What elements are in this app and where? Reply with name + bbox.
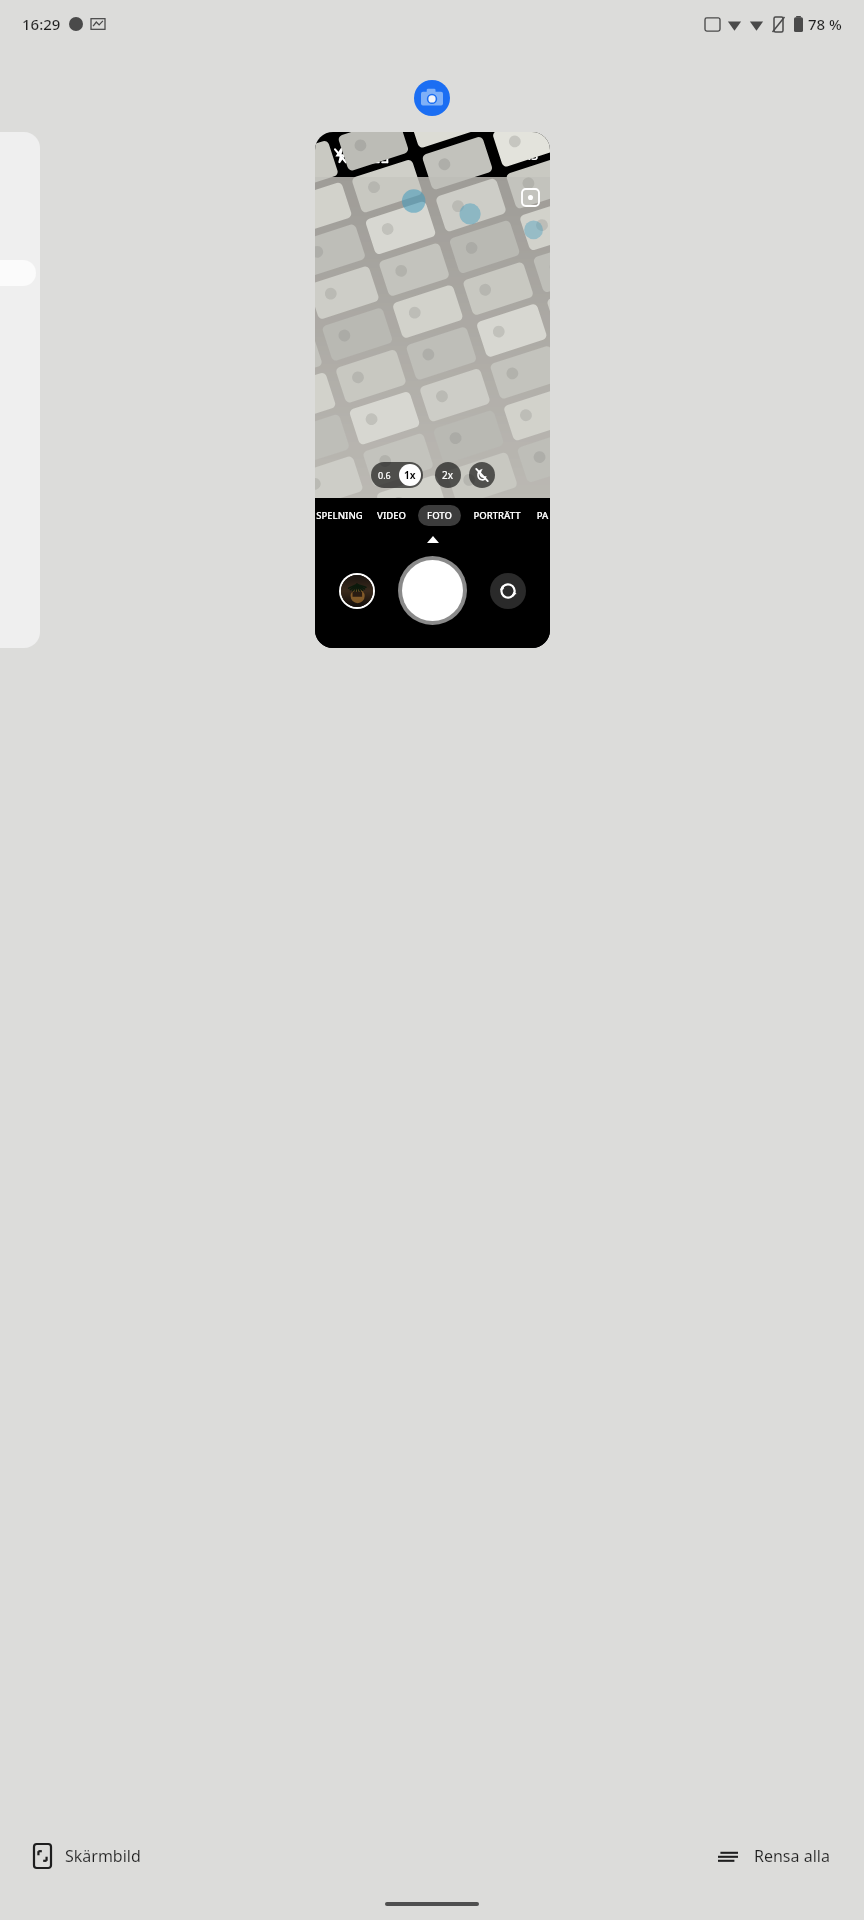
button[interactable]: SPELNING bbox=[316, 505, 363, 526]
staticText: SPELNING bbox=[316, 509, 363, 522]
button[interactable]: Skärmbild bbox=[34, 1832, 141, 1880]
staticText: FOTO bbox=[427, 509, 452, 522]
staticText: Skärmbild bbox=[65, 1845, 141, 1867]
staticText: VIDEO bbox=[377, 509, 406, 522]
button[interactable]: Gallery bbox=[341, 575, 373, 607]
button[interactable]: PANOR bbox=[535, 505, 550, 526]
button[interactable]: FOTO bbox=[418, 505, 461, 526]
button[interactable]: Scan bbox=[520, 187, 540, 207]
button[interactable]: Night mode off bbox=[469, 462, 495, 488]
staticText: PORTRÄTT bbox=[473, 509, 521, 522]
staticText: 78 % bbox=[808, 14, 842, 34]
button[interactable]: Take photo bbox=[402, 560, 463, 621]
staticText: Rensa alla bbox=[754, 1845, 830, 1867]
button[interactable]: Flash off bbox=[315, 132, 550, 648]
staticText: 4:3 bbox=[521, 147, 538, 163]
button[interactable]: Switch camera bbox=[490, 573, 526, 609]
button[interactable]: VIDEO bbox=[377, 505, 406, 526]
staticText: 2x bbox=[442, 468, 454, 482]
button[interactable]: Lens bbox=[367, 142, 393, 168]
button[interactable]: Rensa alla bbox=[718, 1833, 830, 1879]
button[interactable]: Flash off bbox=[327, 142, 353, 168]
staticText: 16:29 bbox=[22, 14, 61, 34]
staticText: 0.6 bbox=[378, 469, 391, 481]
staticText: 1x bbox=[404, 468, 416, 482]
button[interactable]: 0.6 bbox=[371, 462, 423, 488]
button[interactable]: Camera app bbox=[414, 80, 450, 116]
button[interactable]: 2x bbox=[435, 462, 461, 488]
button[interactable]: More settings bbox=[444, 142, 470, 168]
button[interactable]: PORTRÄTT bbox=[473, 505, 521, 526]
staticText: PANOR bbox=[535, 509, 550, 522]
button[interactable]: Aspect ratio 4:3 bbox=[521, 147, 538, 163]
